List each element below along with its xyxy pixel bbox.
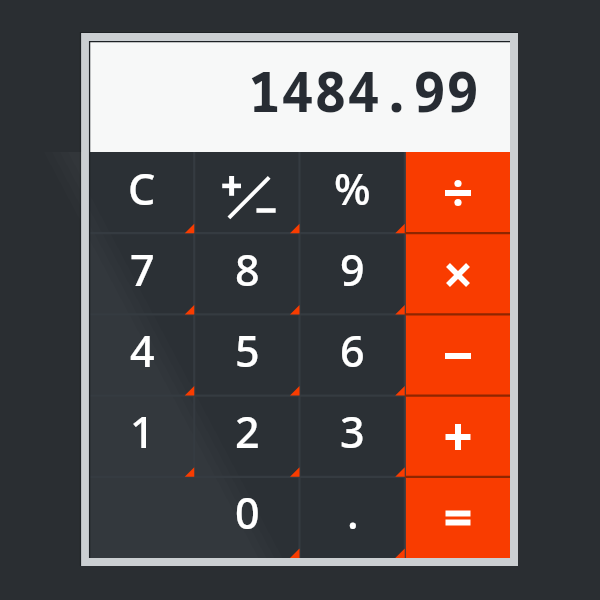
button[interactable]: 5 — [195, 315, 300, 396]
staticText: 2 — [235, 402, 260, 461]
button[interactable]: 9 — [300, 234, 405, 315]
staticText: C — [128, 159, 156, 218]
button[interactable]: . — [300, 477, 405, 558]
staticText: % — [334, 159, 371, 218]
staticText: 1 — [130, 402, 155, 461]
button[interactable]: 2 — [195, 396, 300, 477]
button[interactable]: Divide — [405, 152, 510, 234]
button[interactable]: Multiply — [405, 234, 510, 315]
button[interactable]: C — [89, 152, 195, 234]
staticText: 8 — [235, 240, 260, 299]
button[interactable]: Add — [405, 396, 510, 477]
button[interactable]: 3 — [300, 396, 405, 477]
staticText: 6 — [340, 321, 365, 380]
staticText: 0 — [235, 483, 260, 542]
button[interactable]: 6 — [300, 315, 405, 396]
button[interactable]: 1 — [89, 396, 195, 477]
button[interactable]: Equals — [405, 477, 510, 558]
staticText: . — [347, 483, 359, 542]
button[interactable]: 8 — [195, 234, 300, 315]
staticText: 3 — [340, 402, 365, 461]
button[interactable] — [195, 152, 300, 234]
button[interactable]: % — [300, 152, 405, 234]
button[interactable]: 4 — [89, 315, 195, 396]
staticText: 4 — [130, 321, 155, 380]
staticText: 1484.99 — [248, 53, 480, 128]
button[interactable]: 0 — [195, 477, 300, 558]
staticText: 5 — [235, 321, 260, 380]
staticText: 7 — [130, 240, 155, 299]
staticText: 9 — [340, 240, 365, 299]
button[interactable]: 7 — [89, 234, 195, 315]
button[interactable]: Subtract — [405, 315, 510, 396]
